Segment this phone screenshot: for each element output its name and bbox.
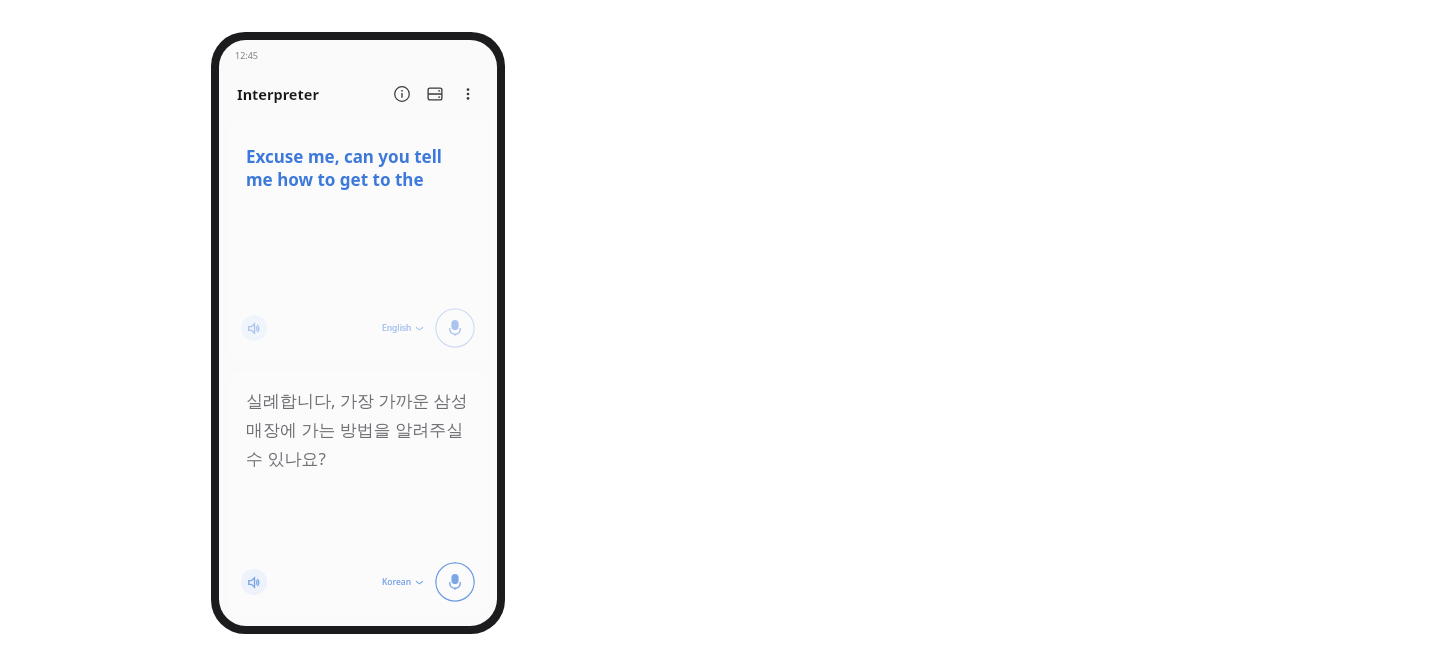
staticText: Excuse me, can you tell me how to get to… xyxy=(246,145,470,191)
button[interactable]: Play audio xyxy=(241,569,267,595)
button[interactable]: Split view xyxy=(420,79,450,109)
button[interactable]: Microphone xyxy=(435,562,475,602)
staticText: 실례합니다, 가장 가까운 삼성 매장에 가는 방법을 알려주실 수 있나요? xyxy=(246,389,470,470)
button[interactable]: Play audio xyxy=(241,315,267,341)
staticText: Interpreter xyxy=(237,84,319,104)
button[interactable]: Korean xyxy=(378,572,427,592)
button[interactable]: Information xyxy=(387,79,417,109)
button[interactable]: Microphone xyxy=(435,308,475,348)
button[interactable]: English xyxy=(378,318,427,338)
button[interactable]: Excuse me, can you tell me how to get to… xyxy=(229,118,487,362)
button[interactable]: More options xyxy=(453,79,483,109)
button[interactable]: 실례합니다, 가장 가까운 삼성 매장에 가는 방법을 알려주실 수 있나요? xyxy=(229,371,487,616)
staticText: English xyxy=(382,322,412,334)
staticText: 12:45 xyxy=(235,49,259,61)
staticText: Korean xyxy=(382,576,412,588)
